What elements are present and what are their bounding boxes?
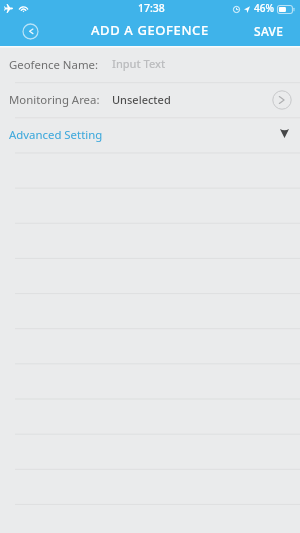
staticText: Advanced Setting: [9, 127, 103, 143]
button[interactable]: Monitoring Area:: [0, 82, 300, 117]
staticText: Input Text: [112, 56, 166, 71]
staticText: Geofence Name:: [9, 57, 99, 73]
staticText: ADD A GEOFENCE: [91, 21, 209, 39]
button[interactable]: Select monitoring area: [272, 90, 292, 110]
button[interactable]: Expand advanced setting: [280, 129, 289, 138]
staticText: Unselected: [112, 92, 171, 107]
button[interactable]: Advanced Setting: [0, 117, 300, 152]
staticText: SAVE: [254, 23, 284, 39]
button[interactable]: Geofence Name:: [0, 46, 300, 82]
button[interactable]: SAVE: [238, 17, 300, 46]
staticText: 17:38: [138, 1, 165, 15]
button[interactable]: Back: [22, 23, 39, 40]
staticText: Monitoring Area:: [9, 92, 100, 108]
staticText: 46%: [254, 1, 274, 15]
